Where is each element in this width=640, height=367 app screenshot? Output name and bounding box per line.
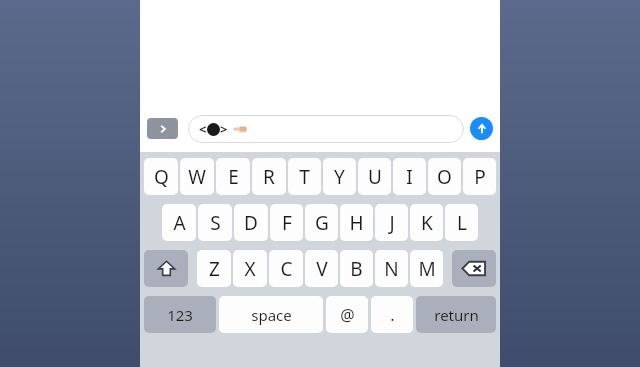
staticText: W: [188, 164, 206, 190]
staticText: E: [228, 164, 239, 190]
button[interactable]: F: [270, 204, 303, 241]
staticText: @: [340, 304, 355, 326]
staticText: >: [220, 120, 228, 138]
button[interactable]: .: [371, 296, 413, 333]
button[interactable]: C: [269, 250, 303, 287]
button[interactable]: R: [252, 158, 286, 195]
button[interactable]: 123: [144, 296, 216, 333]
button[interactable]: @: [326, 296, 368, 333]
button[interactable]: N: [375, 250, 408, 287]
staticText: <: [199, 120, 207, 138]
staticText: M: [418, 256, 436, 282]
button[interactable]: K: [410, 204, 443, 241]
staticText: R: [263, 164, 275, 190]
staticText: Y: [334, 164, 345, 190]
staticText: 123: [167, 305, 193, 325]
staticText: H: [349, 210, 364, 236]
staticText: C: [280, 256, 293, 282]
button[interactable]: Backspace: [452, 250, 496, 287]
button[interactable]: App drawer: [147, 118, 178, 139]
button[interactable]: H: [340, 204, 373, 241]
button[interactable]: Q: [144, 158, 178, 195]
button[interactable]: Shift: [144, 250, 188, 287]
button[interactable]: Y: [323, 158, 356, 195]
button[interactable]: Send: [470, 117, 493, 140]
staticText: B: [350, 256, 363, 282]
button[interactable]: U: [358, 158, 391, 195]
button[interactable]: B: [340, 250, 373, 287]
staticText: G: [315, 210, 329, 236]
button[interactable]: space: [219, 296, 323, 333]
button[interactable]: L: [445, 204, 478, 241]
staticText: L: [457, 210, 467, 236]
staticText: P: [474, 164, 486, 190]
staticText: Z: [209, 256, 220, 282]
staticText: return: [434, 305, 479, 325]
staticText: space: [251, 305, 292, 325]
button[interactable]: T: [288, 158, 321, 195]
staticText: X: [244, 256, 256, 282]
staticText: I: [406, 164, 413, 190]
staticText: T: [299, 164, 310, 190]
staticText: F: [282, 210, 292, 236]
button[interactable]: J: [375, 204, 408, 241]
staticText: K: [421, 210, 433, 236]
staticText: O: [437, 164, 452, 190]
staticText: V: [316, 256, 328, 282]
staticText: Q: [154, 164, 169, 190]
staticText: D: [244, 210, 258, 236]
button[interactable]: O: [428, 158, 461, 195]
staticText: A: [173, 210, 186, 236]
button[interactable]: S: [198, 204, 232, 241]
button[interactable]: D: [234, 204, 268, 241]
button[interactable]: return: [416, 296, 496, 333]
button[interactable]: P: [463, 158, 496, 195]
button[interactable]: G: [305, 204, 338, 241]
button[interactable]: V: [305, 250, 338, 287]
staticText: S: [210, 210, 221, 236]
button[interactable]: W: [180, 158, 214, 195]
button[interactable]: M: [410, 250, 443, 287]
button[interactable]: <: [188, 115, 464, 143]
button[interactable]: E: [216, 158, 250, 195]
button[interactable]: Z: [197, 250, 231, 287]
staticText: J: [389, 210, 395, 236]
button[interactable]: I: [393, 158, 426, 195]
staticText: .: [390, 304, 395, 326]
staticText: U: [368, 164, 382, 190]
staticText: N: [384, 256, 399, 282]
button[interactable]: A: [162, 204, 196, 241]
button[interactable]: X: [233, 250, 267, 287]
